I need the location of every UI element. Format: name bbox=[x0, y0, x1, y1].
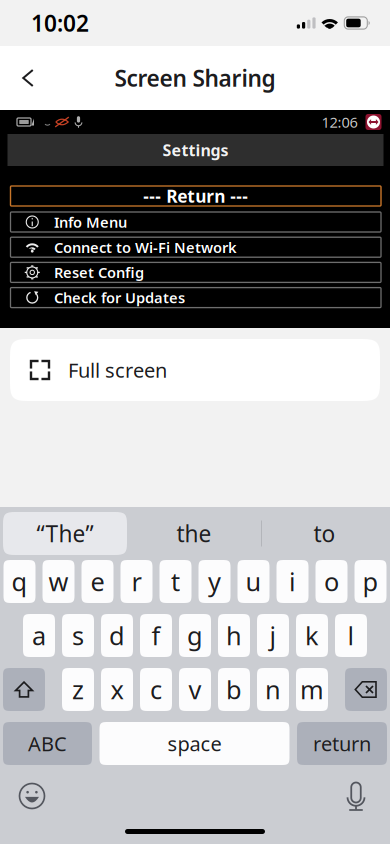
button[interactable]: b bbox=[218, 668, 250, 711]
button[interactable]: Delete bbox=[345, 668, 387, 711]
staticText: m bbox=[300, 673, 324, 706]
button[interactable]: v bbox=[179, 668, 211, 711]
button[interactable]: k bbox=[296, 614, 328, 657]
staticText: a bbox=[32, 619, 46, 652]
staticText: Full screen bbox=[68, 357, 167, 383]
staticText: e bbox=[90, 565, 104, 598]
button[interactable]: g bbox=[179, 614, 211, 657]
button[interactable]: Reset Config bbox=[10, 262, 381, 282]
staticText: t bbox=[171, 565, 180, 598]
staticText: h bbox=[226, 619, 242, 652]
button[interactable]: m bbox=[296, 668, 328, 711]
staticText: i bbox=[289, 565, 296, 598]
button[interactable]: Check for Updates bbox=[10, 288, 381, 308]
button[interactable]: n bbox=[257, 668, 289, 711]
staticText: “The” bbox=[36, 518, 93, 548]
button[interactable]: d bbox=[101, 614, 133, 657]
staticText: l bbox=[347, 619, 354, 652]
button[interactable]: ABC bbox=[3, 722, 92, 765]
button[interactable]: i bbox=[276, 560, 308, 603]
staticText: c bbox=[150, 673, 162, 706]
staticText: o bbox=[324, 565, 339, 598]
staticText: w bbox=[48, 565, 68, 598]
staticText: b bbox=[226, 673, 242, 706]
staticText: k bbox=[305, 619, 319, 652]
button[interactable]: return bbox=[297, 722, 387, 765]
button[interactable]: “The” bbox=[3, 512, 127, 555]
button[interactable]: t bbox=[159, 560, 191, 603]
staticText: to bbox=[313, 518, 335, 548]
button[interactable]: x bbox=[101, 668, 133, 711]
staticText: d bbox=[109, 619, 125, 652]
button[interactable]: space bbox=[99, 722, 289, 765]
button[interactable]: z bbox=[62, 668, 94, 711]
staticText: x bbox=[110, 673, 123, 706]
staticText: n bbox=[265, 673, 281, 706]
button[interactable]: Full screen bbox=[10, 339, 380, 401]
staticText: Reset Config bbox=[54, 263, 144, 282]
button[interactable]: p bbox=[354, 560, 386, 603]
button[interactable]: a bbox=[23, 614, 55, 657]
staticText: s bbox=[72, 619, 84, 652]
button[interactable]: the bbox=[127, 512, 261, 555]
button[interactable]: Back bbox=[6, 56, 50, 100]
button[interactable]: e bbox=[81, 560, 113, 603]
staticText: r bbox=[131, 565, 141, 598]
staticText: --- Return --- bbox=[143, 184, 248, 207]
staticText: Info Menu bbox=[54, 212, 127, 232]
staticText: j bbox=[269, 619, 276, 652]
button[interactable]: Dictation bbox=[334, 774, 378, 818]
button[interactable]: f bbox=[140, 614, 172, 657]
staticText: y bbox=[208, 565, 221, 598]
staticText: p bbox=[362, 565, 378, 598]
button[interactable]: o bbox=[315, 560, 347, 603]
staticText: q bbox=[11, 565, 27, 598]
button[interactable]: r bbox=[120, 560, 152, 603]
button[interactable]: Emoji keyboard bbox=[10, 774, 54, 818]
staticText: 12:06 bbox=[321, 112, 357, 132]
button[interactable]: u bbox=[237, 560, 269, 603]
staticText: return bbox=[313, 730, 371, 757]
button[interactable]: h bbox=[218, 614, 250, 657]
staticText: v bbox=[188, 673, 201, 706]
button[interactable]: Info Menu bbox=[10, 212, 381, 232]
staticText: g bbox=[187, 619, 203, 652]
button[interactable]: c bbox=[140, 668, 172, 711]
button[interactable]: Connect to Wi-Fi Network bbox=[10, 237, 381, 257]
staticText: Screen Sharing bbox=[114, 63, 275, 93]
button[interactable]: w bbox=[42, 560, 74, 603]
button[interactable]: y bbox=[198, 560, 230, 603]
button[interactable]: s bbox=[62, 614, 94, 657]
staticText: Connect to Wi-Fi Network bbox=[54, 237, 237, 257]
button[interactable]: q bbox=[3, 560, 35, 603]
staticText: f bbox=[151, 619, 160, 652]
staticText: space bbox=[167, 730, 221, 757]
button[interactable]: to bbox=[262, 512, 387, 555]
staticText: 10:02 bbox=[31, 8, 89, 38]
staticText: ABC bbox=[28, 730, 67, 757]
staticText: Settings bbox=[162, 139, 228, 161]
staticText: z bbox=[72, 673, 84, 706]
staticText: u bbox=[245, 565, 261, 598]
staticText: Check for Updates bbox=[54, 288, 185, 307]
button[interactable]: j bbox=[257, 614, 289, 657]
button[interactable]: Shift bbox=[3, 668, 45, 711]
button[interactable]: l bbox=[335, 614, 367, 657]
staticText: the bbox=[176, 518, 211, 548]
